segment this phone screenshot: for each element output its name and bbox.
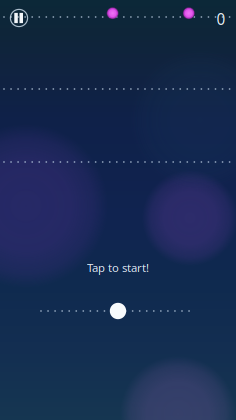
button[interactable]: Pause [0, 0, 236, 420]
staticText: 0 [216, 8, 225, 29]
staticText: Tap to start! [87, 260, 149, 275]
